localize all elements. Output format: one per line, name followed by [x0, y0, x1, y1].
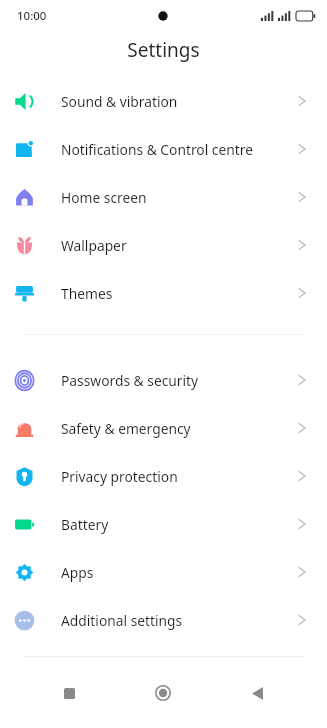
staticText: Wallpaper — [61, 236, 298, 255]
button[interactable]: Sound & vibration — [0, 77, 327, 125]
staticText: Sound & vibration — [61, 92, 298, 111]
staticText: Themes — [61, 284, 298, 303]
staticText: Home screen — [61, 188, 298, 207]
button[interactable]: Apps — [0, 548, 327, 596]
staticText: Privacy protection — [61, 467, 298, 486]
button[interactable]: Notifications & Control centre — [0, 125, 327, 173]
button[interactable]: Themes — [0, 269, 327, 317]
button[interactable]: Wallpaper — [0, 221, 327, 269]
button[interactable]: Recent apps — [45, 669, 93, 717]
button[interactable]: Battery — [0, 500, 327, 548]
button[interactable]: Privacy protection — [0, 452, 327, 500]
staticText: Notifications & Control centre — [61, 140, 298, 159]
button[interactable]: Home screen — [0, 173, 327, 221]
button[interactable]: Back — [233, 669, 281, 717]
staticText: Safety & emergency — [61, 419, 298, 438]
button[interactable]: Safety & emergency — [0, 404, 327, 452]
staticText: Additional settings — [61, 611, 298, 630]
button[interactable]: Home — [139, 669, 187, 717]
staticText: 10:00 — [17, 8, 47, 24]
staticText: Settings — [127, 37, 200, 63]
button[interactable]: Passwords & security — [0, 356, 327, 404]
staticText: Apps — [61, 563, 298, 582]
staticText: Battery — [61, 515, 298, 534]
button[interactable]: Additional settings — [0, 596, 327, 644]
staticText: Passwords & security — [61, 371, 298, 390]
